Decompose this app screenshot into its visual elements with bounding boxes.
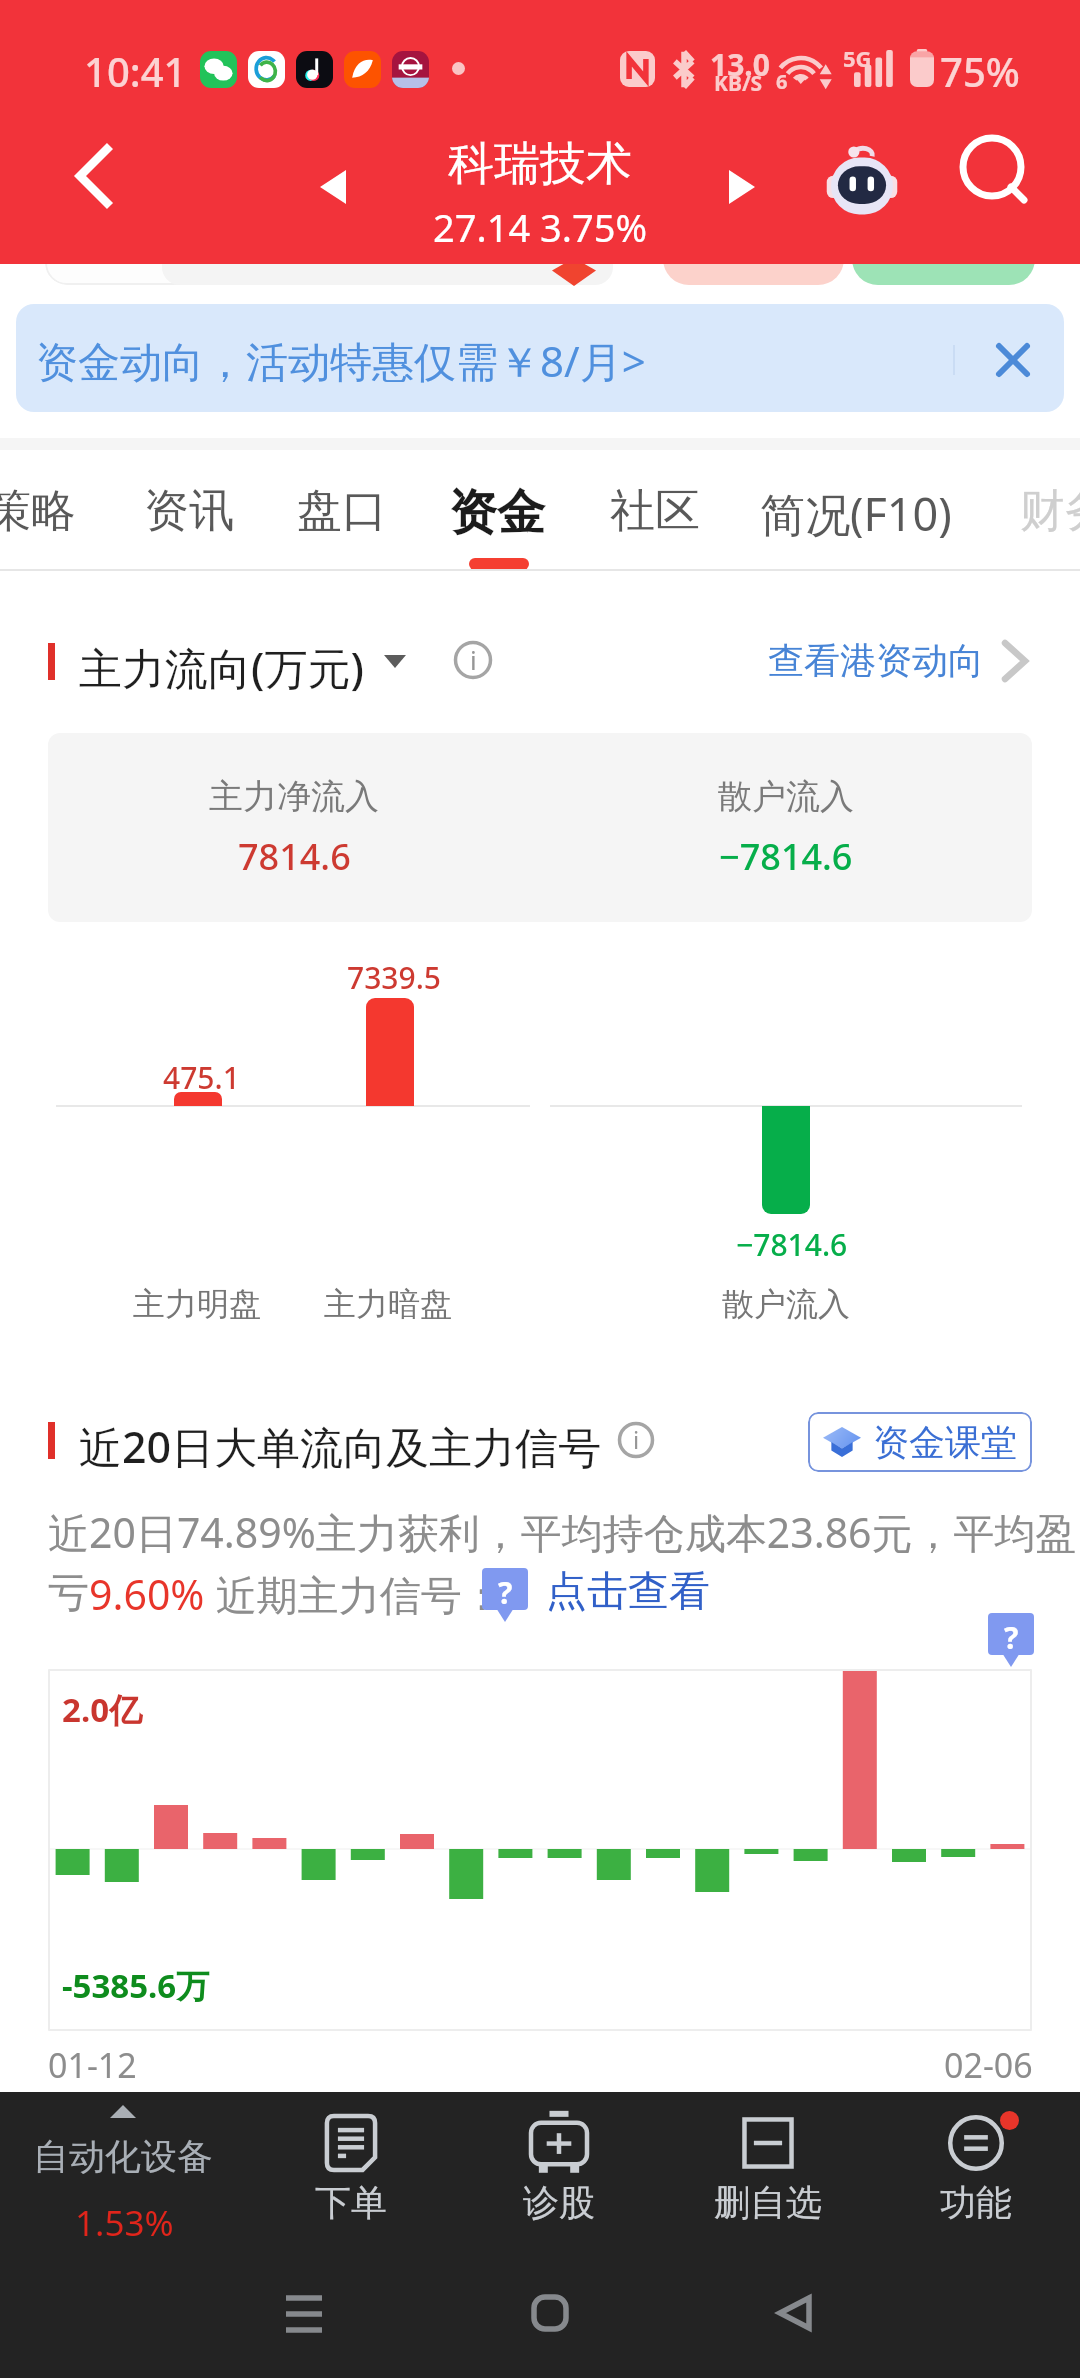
button[interactable]: 资讯 — [110, 450, 268, 569]
staticText: i — [633, 1423, 640, 1456]
button[interactable]: 删自选 — [663, 2092, 872, 2238]
button[interactable]: Previous stock — [293, 147, 373, 227]
staticText: 查看港资动向 — [768, 638, 984, 683]
staticText: −7814.6 — [736, 1224, 848, 1265]
staticText: 资金课堂 — [873, 1420, 1017, 1465]
staticText: 01-12 — [48, 2042, 137, 2088]
button[interactable]: Back — [52, 128, 138, 224]
button[interactable]: 查看港资动向 — [768, 638, 1028, 683]
staticText: 散户流入 — [722, 1284, 850, 1324]
staticText: ? — [498, 1572, 513, 1613]
button[interactable]: 简况(F10) — [726, 450, 986, 569]
staticText: 475.1 — [163, 1057, 240, 1098]
staticText: 10:41 — [84, 44, 187, 98]
staticText: 科瑞技术 — [448, 135, 632, 193]
staticText: 财务 — [1020, 483, 1080, 540]
button[interactable]: 下单 — [246, 2092, 455, 2238]
button[interactable]: AI assistant — [814, 138, 910, 234]
staticText: 盘口 — [297, 483, 387, 540]
staticText: 27.14 3.75% — [433, 201, 647, 253]
button[interactable]: 资金动向，活动特惠仅需￥8/月> — [16, 304, 1064, 412]
button[interactable]: 资金 — [415, 450, 579, 569]
button[interactable]: Search — [951, 130, 1039, 218]
staticText: 简况(F10) — [760, 483, 952, 544]
staticText: ? — [1004, 1617, 1019, 1658]
staticText: i — [470, 642, 477, 677]
staticText: -5385.6万 — [62, 1963, 210, 2008]
staticText: 主力明盘 — [133, 1284, 261, 1324]
button[interactable]: Recents — [200, 2238, 408, 2378]
button[interactable]: 自动化设备 — [0, 2092, 246, 2238]
staticText: 诊股 — [523, 2180, 595, 2225]
staticText: 6 — [776, 68, 788, 95]
staticText: 75% — [940, 44, 1020, 98]
staticText: −7814.6 — [719, 832, 853, 881]
staticText: 策略 — [0, 483, 76, 540]
staticText: 近20日74.89%主力获利，平均持仓成本23.86元，平均盈 — [48, 1504, 1077, 1560]
staticText: 5G — [843, 43, 872, 73]
staticText: 02-06 — [944, 2042, 1033, 2088]
button[interactable]: 诊股 — [454, 2092, 663, 2238]
button[interactable]: 策略 — [0, 450, 110, 569]
staticText: 散户流入 — [718, 775, 854, 818]
staticText: 资金 — [449, 483, 545, 543]
staticText: 2.0亿 — [62, 1687, 143, 1732]
button[interactable]: Next stock — [702, 147, 782, 227]
staticText: 删自选 — [714, 2180, 822, 2225]
staticText: 近20日大单流向及主力信号 — [79, 1417, 602, 1476]
staticText: 主力净流入 — [209, 775, 379, 818]
button[interactable]: 财务 — [986, 450, 1080, 569]
button[interactable]: 资金课堂 — [808, 1412, 1032, 1472]
staticText: 7339.5 — [347, 957, 441, 998]
staticText: 13.0 — [710, 44, 770, 85]
staticText: 资讯 — [144, 483, 234, 540]
staticText: 主力暗盘 — [324, 1284, 452, 1324]
button[interactable]: 功能 — [871, 2092, 1080, 2238]
staticText: 1.53% — [75, 2199, 174, 2247]
button[interactable]: Close banner — [971, 318, 1055, 402]
button[interactable]: 社区 — [576, 450, 734, 569]
staticText: KB/S — [714, 69, 763, 98]
staticText: 9.60% — [89, 1566, 205, 1622]
button[interactable]: 盘口 — [263, 450, 421, 569]
button[interactable]: Back — [690, 2238, 898, 2378]
staticText: 点击查看 — [546, 1566, 710, 1618]
staticText: 主力流向(万元) — [79, 638, 364, 697]
staticText: 近期主力信号： — [205, 1566, 503, 1622]
button[interactable]: Info — [612, 1416, 660, 1464]
staticText: 社区 — [610, 483, 700, 540]
staticText: 下单 — [315, 2180, 387, 2225]
button[interactable]: Home — [446, 2238, 654, 2378]
staticText: 资金动向，活动特惠仅需￥8/月> — [36, 332, 646, 389]
staticText: 亏 — [48, 1568, 89, 1620]
button[interactable]: Info — [449, 636, 497, 684]
staticText: 功能 — [940, 2180, 1012, 2225]
staticText: 自动化设备 — [33, 2134, 213, 2179]
staticText: 7814.6 — [238, 832, 351, 881]
